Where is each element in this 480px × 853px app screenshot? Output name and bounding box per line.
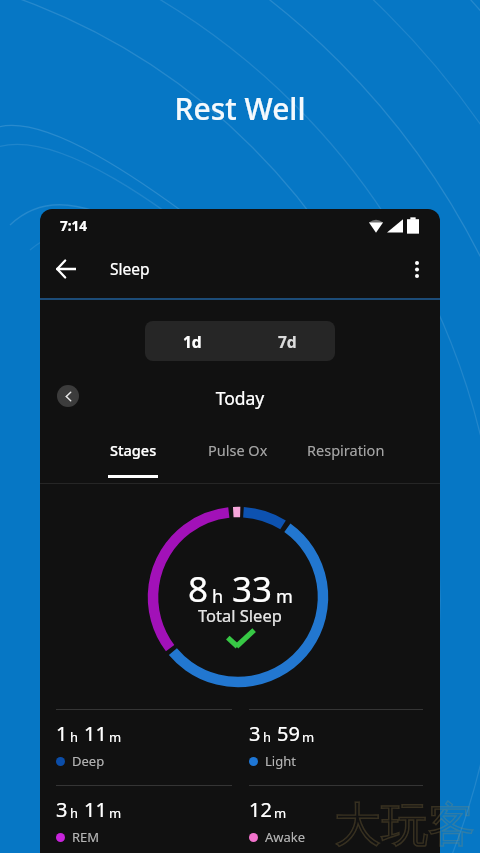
button[interactable]: 3 [56,785,232,846]
staticText: 1 [56,720,68,747]
staticText: Light [265,752,296,770]
button[interactable]: 7d [240,321,335,361]
staticText: Pulse Ox [208,440,268,460]
button[interactable]: 12 [249,785,423,846]
staticText: m [302,728,315,746]
staticText: m [109,728,122,746]
staticText: m [109,804,122,822]
staticText: 3 [56,796,68,823]
staticText: Respiration [307,440,385,460]
staticText: 59 [277,720,300,747]
staticText: Stages [110,440,157,460]
staticText: 33 [232,565,273,613]
button[interactable]: Back [46,249,86,289]
staticText: Today [40,386,440,410]
staticText: REM [72,828,100,846]
button[interactable]: Pulse Ox [178,435,298,484]
staticText: h [70,804,79,822]
staticText: h [70,728,79,746]
staticText: Sleep [110,258,150,279]
staticText: 7:14 [60,217,87,235]
staticText: h [263,728,272,746]
staticText: Deep [72,752,105,770]
button[interactable]: Stages [73,435,193,484]
button[interactable]: 3 [249,709,423,770]
staticText: Rest Well [0,88,480,129]
staticText: 大玩客 [334,796,475,853]
staticText: m [274,804,287,822]
staticText: 12 [249,796,272,823]
button[interactable]: Respiration [286,435,406,484]
staticText: h [212,584,224,609]
button[interactable]: 1 [56,709,232,770]
staticText: 8 [188,565,209,613]
staticText: 3 [249,720,261,747]
button[interactable]: 1d [145,321,240,361]
staticText: 11 [84,720,107,747]
staticText: Total Sleep [198,604,282,626]
button[interactable]: Previous day [57,385,79,407]
staticText: m [276,584,293,609]
staticText: 11 [84,796,107,823]
staticText: 1d [183,331,202,352]
staticText: Awake [265,828,306,846]
staticText: 7d [278,331,297,352]
button[interactable]: More options [397,249,437,289]
